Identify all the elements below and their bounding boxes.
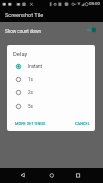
button[interactable]: Home — [43, 168, 59, 183]
button[interactable]: 5s — [7, 101, 95, 112]
button[interactable]: Show count down — [0, 22, 103, 38]
button[interactable]: 2s — [7, 87, 95, 98]
button[interactable]: MORE SETTINGS — [12, 119, 49, 128]
button[interactable]: Instant — [7, 61, 95, 72]
button[interactable]: Back — [15, 168, 31, 183]
staticText: Instant — [28, 64, 43, 69]
staticText: 1s — [28, 77, 33, 82]
staticText: CANCEL — [75, 121, 90, 126]
button[interactable]: CANCEL — [72, 119, 93, 128]
staticText: 08:00 — [89, 1, 100, 6]
staticText: Delay — [13, 51, 28, 58]
button[interactable]: 1s — [7, 74, 95, 85]
staticText: MORE SETTINGS — [15, 121, 46, 126]
button[interactable]: Recents — [70, 168, 86, 183]
staticText: 5s — [28, 104, 33, 109]
staticText: Screenshot Tile — [5, 12, 44, 19]
staticText: 2s — [28, 90, 33, 95]
staticText: Show count down — [5, 29, 41, 34]
